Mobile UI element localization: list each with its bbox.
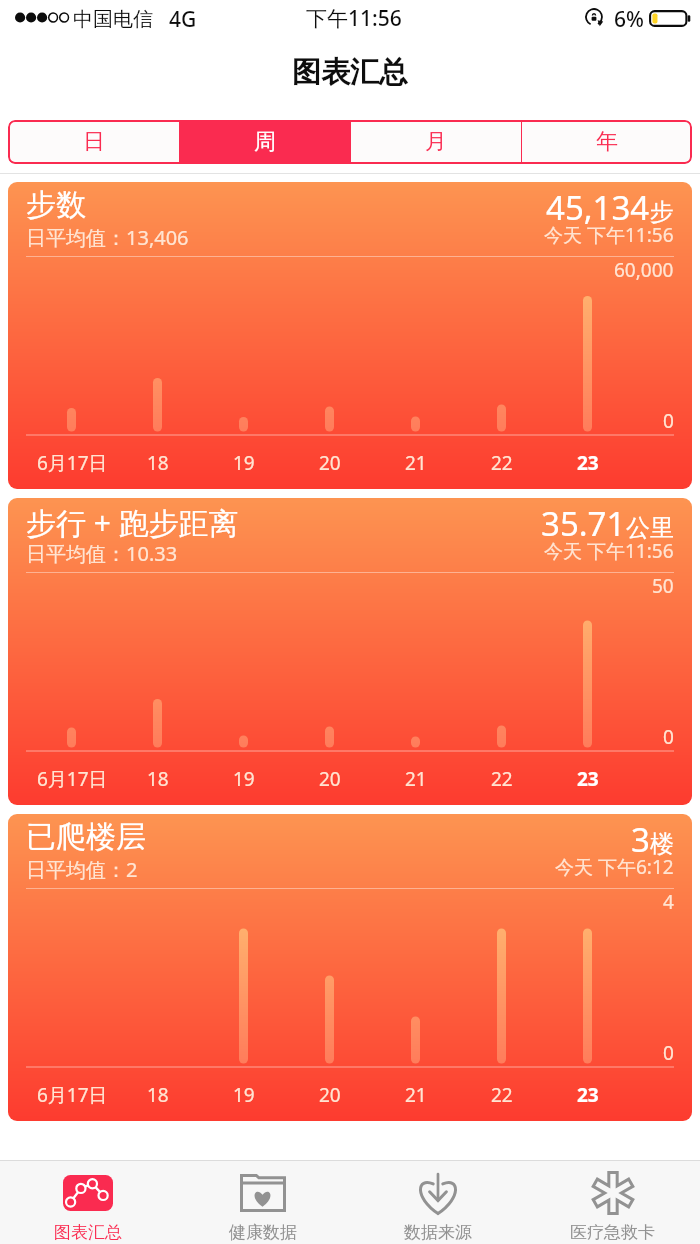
staticText: 日 [83, 128, 105, 156]
staticText: 周 [254, 128, 276, 156]
staticText: 步数 [26, 186, 86, 224]
button[interactable]: 步数 [8, 182, 692, 489]
button[interactable]: 周 [180, 120, 350, 164]
staticText: 今天 下午11:56 [544, 222, 674, 248]
button[interactable]: 日 [8, 120, 179, 164]
button[interactable]: Sources [350, 1161, 525, 1244]
staticText: 月 [425, 128, 447, 156]
staticText: 医疗急救卡 [570, 1222, 655, 1243]
staticText: 45,134 [546, 185, 650, 230]
staticText: 22 [491, 1082, 513, 1108]
staticText: 19 [233, 766, 255, 792]
staticText: 健康数据 [229, 1222, 297, 1243]
button[interactable]: Summary [0, 1161, 175, 1244]
staticText: 日平均值：13,406 [26, 224, 189, 251]
staticText: 楼 [650, 829, 674, 859]
staticText: 年 [596, 128, 618, 156]
staticText: 3 [631, 817, 650, 862]
staticText: 35.71 [541, 501, 626, 546]
staticText: 0 [663, 724, 674, 750]
staticText: 60,000 [614, 257, 674, 283]
staticText: 18 [147, 1082, 169, 1108]
staticText: 4G [169, 5, 197, 34]
staticText: 已爬楼层 [26, 818, 146, 856]
button[interactable]: Medical ID [525, 1161, 700, 1244]
staticText: 6月17日 [37, 1082, 108, 1108]
staticText: 0 [663, 408, 674, 434]
staticText: 6% [614, 5, 644, 34]
staticText: 图表汇总 [54, 1222, 122, 1243]
button[interactable]: 已爬楼层 [8, 814, 692, 1121]
staticText: 18 [147, 766, 169, 792]
staticText: 日平均值：2 [26, 856, 138, 883]
staticText: 19 [233, 1082, 255, 1108]
button[interactable]: 年 [522, 120, 692, 164]
staticText: 20 [319, 766, 341, 792]
staticText: 步行 + 跑步距离 [26, 502, 239, 543]
staticText: 图表汇总 [292, 54, 408, 91]
staticText: 20 [319, 1082, 341, 1108]
staticText: 22 [491, 766, 513, 792]
staticText: 21 [405, 450, 427, 476]
staticText: 0 [663, 1040, 674, 1066]
staticText: 23 [577, 1082, 599, 1108]
staticText: 50 [652, 573, 674, 599]
staticText: 6月17日 [37, 766, 108, 792]
button[interactable]: Health Data [175, 1161, 350, 1244]
staticText: 今天 下午11:56 [544, 538, 674, 564]
button[interactable]: 月 [351, 120, 521, 164]
staticText: 19 [233, 450, 255, 476]
staticText: 21 [405, 1082, 427, 1108]
staticText: 23 [577, 450, 599, 476]
staticText: 18 [147, 450, 169, 476]
staticText: 23 [577, 766, 599, 792]
staticText: 公里 [626, 513, 674, 543]
button[interactable]: 步行 + 跑步距离 [8, 498, 692, 805]
staticText: 20 [319, 450, 341, 476]
staticText: 日平均值：10.33 [26, 540, 178, 567]
staticText: 22 [491, 450, 513, 476]
staticText: 今天 下午6:12 [555, 854, 674, 880]
staticText: 4 [663, 889, 674, 915]
staticText: 下午11:56 [306, 4, 402, 33]
staticText: 6月17日 [37, 450, 108, 476]
staticText: 中国电信 [73, 7, 153, 32]
staticText: 步 [650, 197, 674, 227]
staticText: 21 [405, 766, 427, 792]
staticText: 数据来源 [404, 1222, 472, 1243]
